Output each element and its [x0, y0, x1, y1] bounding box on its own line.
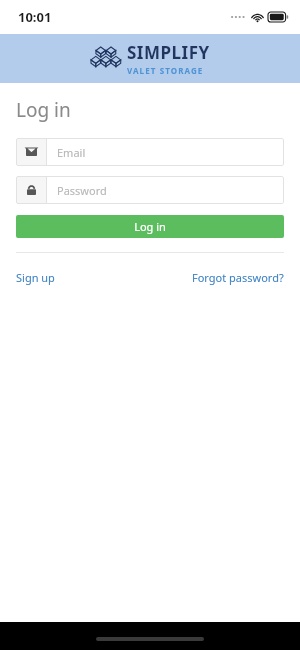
button[interactable]: Forgot password?: [192, 270, 284, 285]
staticText: Log in: [16, 97, 71, 123]
button[interactable]: Email: [16, 138, 284, 166]
button[interactable]: Log in: [16, 215, 284, 238]
button[interactable]: Sign up: [16, 270, 55, 285]
staticText: VALET STORAGE: [127, 65, 204, 76]
staticText: Email: [57, 145, 86, 160]
button[interactable]: Password: [16, 176, 284, 204]
staticText: SIMPLIFY: [127, 41, 210, 64]
staticText: Sign up: [16, 270, 55, 285]
staticText: Password: [57, 183, 107, 198]
staticText: Log in: [134, 219, 166, 234]
staticText: Forgot password?: [192, 270, 284, 285]
staticText: 10:01: [18, 8, 52, 26]
